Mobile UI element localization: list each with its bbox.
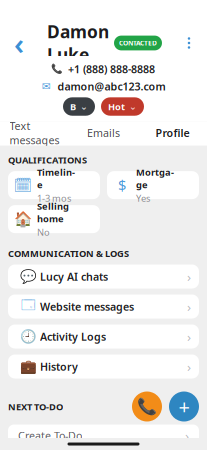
staticText: 💼	[19, 359, 36, 374]
staticText: +	[178, 393, 189, 420]
button[interactable]: Add	[169, 391, 199, 421]
staticText: Create To-Do	[18, 428, 82, 443]
staticText: 💬	[19, 269, 36, 284]
staticText: History	[40, 359, 78, 374]
staticText: 📞	[51, 64, 63, 74]
button[interactable]: 🏠	[8, 205, 100, 233]
staticText: QUALIFICATIONS	[8, 154, 87, 166]
staticText: 🗓	[13, 177, 32, 193]
button[interactable]: Emails	[69, 122, 138, 146]
button[interactable]: 💬	[8, 264, 199, 288]
staticText: 1-3 mos	[37, 192, 71, 204]
staticText: Yes	[136, 192, 150, 204]
staticText: B	[70, 100, 76, 113]
staticText: Activity Logs	[40, 329, 106, 344]
staticText: Profile	[155, 126, 189, 140]
button[interactable]: Back	[4, 30, 34, 56]
staticText: NEXT TO-DO	[8, 400, 63, 413]
staticText: 📞	[137, 397, 157, 416]
staticText: COMMUNICATION & LOGS	[8, 247, 129, 259]
staticText: ›	[187, 328, 191, 345]
button[interactable]: More options	[175, 30, 203, 56]
button[interactable]: Text messages	[0, 122, 69, 146]
button[interactable]: Create To-Do	[8, 424, 199, 446]
button[interactable]: 🕘	[8, 324, 199, 348]
staticText: ›	[187, 298, 191, 315]
staticText: ›	[185, 427, 189, 444]
button[interactable]: $	[107, 171, 199, 199]
staticText: Emails	[87, 126, 120, 140]
button[interactable]: Profile	[138, 122, 207, 146]
button[interactable]: B	[63, 97, 95, 116]
staticText: ›	[187, 358, 191, 375]
staticText: No	[37, 226, 50, 238]
staticText: Mortgage	[136, 166, 174, 191]
staticText: Website messages	[40, 299, 134, 314]
staticText: $	[118, 175, 126, 195]
staticText: Text messages	[9, 119, 59, 147]
staticText: ›	[187, 268, 191, 285]
staticText: 🕘	[19, 329, 36, 344]
staticText: Damon Luke	[47, 20, 109, 66]
staticText: +1 (888) 888-8888	[68, 62, 155, 76]
staticText: ⌄	[129, 101, 137, 112]
staticText: ‹	[14, 23, 24, 62]
staticText: Lucy AI chats	[40, 269, 108, 284]
staticText: 🗔	[21, 295, 35, 318]
staticText: ⌄	[80, 101, 88, 112]
staticText: damon@abc123.com	[57, 79, 165, 93]
staticText: CONTACTED	[119, 39, 157, 47]
button[interactable]: 💼	[8, 354, 199, 378]
button[interactable]: 🗔	[8, 294, 199, 318]
staticText: Hot	[108, 100, 125, 113]
staticText: ✉	[42, 80, 51, 92]
staticText: Timeline	[37, 166, 75, 191]
staticText: Selling home	[37, 200, 69, 225]
button[interactable]: 🗓	[8, 171, 100, 199]
button[interactable]: Hot	[101, 97, 144, 116]
button[interactable]: Call	[132, 391, 162, 421]
staticText: 🏠	[14, 211, 32, 227]
